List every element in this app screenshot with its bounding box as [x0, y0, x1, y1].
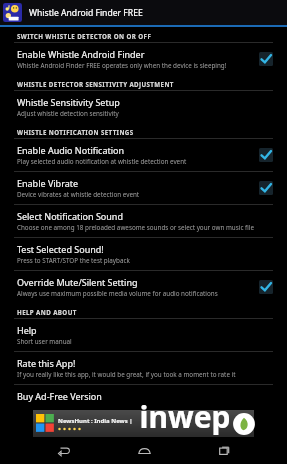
staticText: Enable Audio Notification [17, 144, 125, 156]
button[interactable]: Enable Audio Notification [255, 144, 277, 166]
staticText: Device vibrates at whistle detection eve… [17, 190, 140, 199]
staticText: Rate this App! [17, 357, 76, 369]
button[interactable]: Help [0, 319, 287, 351]
staticText: Help [17, 324, 37, 336]
staticText: Buy Ad-Free Version [17, 390, 102, 402]
staticText: Choose one among 18 preloaded awesome so… [17, 223, 255, 232]
staticText: HELP AND ABOUT [17, 308, 77, 316]
staticText: WHISTLE NOTIFICATION SETTINGS [17, 128, 134, 136]
staticText: Override Mute/Silent Setting [17, 276, 138, 288]
staticText: Whistle Sensitivity Setup [17, 96, 120, 108]
button[interactable]: Buy Ad-Free Version [0, 385, 287, 410]
staticText: Whistle Android Finder FREE [29, 7, 143, 19]
staticText: Enable Whistle Android Finder [17, 48, 145, 60]
button[interactable]: Override Mute/Silent Setting [255, 276, 277, 298]
button[interactable]: Enable Whistle Android Finder [0, 43, 287, 75]
button[interactable]: App icon [3, 3, 22, 22]
button[interactable]: Test Selected Sound! [0, 238, 287, 270]
button[interactable]: Whistle Sensitivity Setup [0, 91, 287, 123]
staticText: Press to START/STOP the test playback [17, 256, 130, 265]
button[interactable]: Rate this App! [0, 352, 287, 384]
staticText: Enable Vibrate [17, 177, 79, 189]
staticText: Test Selected Sound! [17, 243, 104, 255]
button[interactable]: Select Notification Sound [0, 205, 287, 237]
staticText: inwep [139, 396, 231, 437]
staticText: SWITCH WHISTLE DETECTOR ON OR OFF [17, 32, 152, 40]
button[interactable]: Enable Vibrate [255, 177, 277, 199]
staticText: Select Notification Sound [17, 210, 123, 222]
button[interactable]: Enable Whistle Android Finder [255, 48, 277, 70]
button[interactable]: Back [46, 437, 80, 464]
button[interactable]: Home [127, 437, 161, 464]
staticText: Whistle Android Finder FREE operates onl… [17, 61, 227, 70]
button[interactable]: Advertisement [33, 410, 254, 437]
staticText: NewsHunt : India News | [58, 417, 133, 425]
staticText: Always use maximum possible media volume… [17, 289, 218, 298]
button[interactable]: Enable Vibrate [0, 172, 287, 204]
staticText: WHISTLE DETECTOR SENSITIVITY ADJUSTMENT [17, 80, 174, 88]
button[interactable]: Override Mute/Silent Setting [0, 271, 287, 303]
button[interactable]: Enable Audio Notification [0, 139, 287, 171]
staticText: If you really like this app, it would be… [17, 370, 236, 379]
staticText: Play selected audio notification at whis… [17, 157, 187, 166]
staticText: Short user manual [17, 337, 72, 346]
button[interactable]: Recent apps [207, 437, 241, 464]
staticText: Adjust whistle detection sensitivity [17, 109, 119, 118]
